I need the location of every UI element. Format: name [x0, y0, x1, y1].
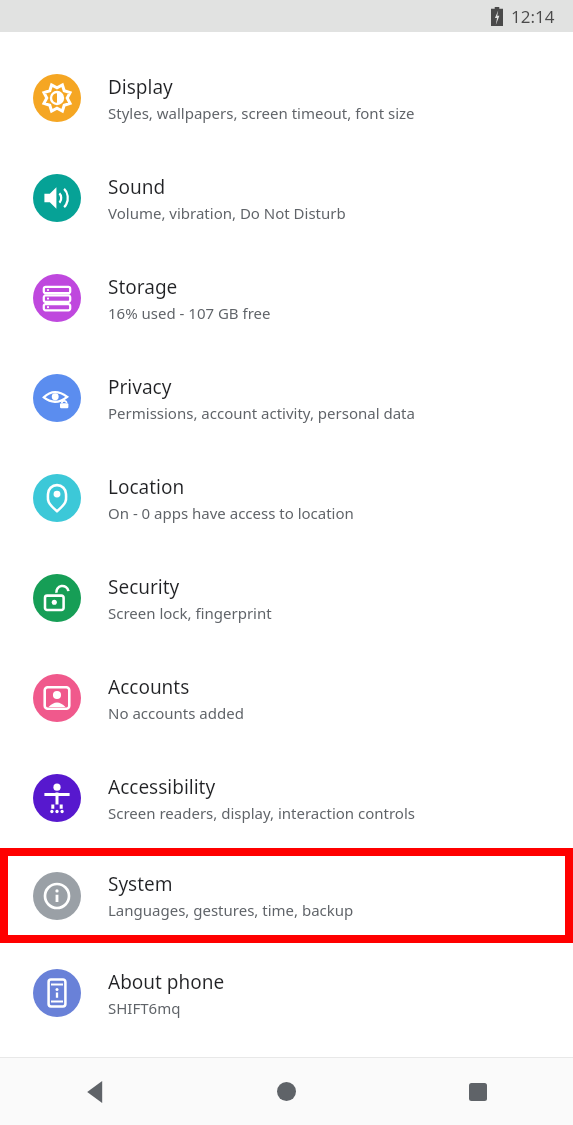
staticText: Privacy: [108, 374, 172, 400]
button[interactable]: Location: [0, 448, 573, 548]
staticText: Permissions, account activity, personal …: [108, 403, 415, 423]
button[interactable]: System: [8, 856, 565, 935]
staticText: Location: [108, 474, 185, 500]
staticText: Screen lock, fingerprint: [108, 603, 272, 623]
button[interactable]: Accounts: [0, 648, 573, 748]
button[interactable]: Sound: [0, 148, 573, 248]
staticText: Languages, gestures, time, backup: [108, 900, 354, 920]
staticText: Accessibility: [108, 774, 216, 800]
button[interactable]: Display: [0, 48, 573, 148]
staticText: No accounts added: [108, 703, 244, 723]
staticText: Volume, vibration, Do Not Disturb: [108, 203, 346, 223]
button[interactable]: Accessibility: [0, 748, 573, 848]
staticText: Screen readers, display, interaction con…: [108, 803, 415, 823]
button[interactable]: Storage: [0, 248, 573, 348]
staticText: 12:14: [511, 5, 555, 28]
staticText: Storage: [108, 274, 178, 300]
staticText: Security: [108, 574, 180, 600]
staticText: On - 0 apps have access to location: [108, 503, 354, 523]
staticText: About phone: [108, 969, 225, 995]
staticText: System: [108, 871, 173, 897]
button[interactable]: Back: [0, 1058, 191, 1125]
button[interactable]: Recents: [382, 1058, 573, 1125]
button[interactable]: Home: [191, 1058, 382, 1125]
button[interactable]: Security: [0, 548, 573, 648]
staticText: Display: [108, 74, 173, 100]
button[interactable]: Privacy: [0, 348, 573, 448]
staticText: SHIFT6mq: [108, 998, 181, 1018]
staticText: 16% used - 107 GB free: [108, 303, 271, 323]
button[interactable]: About phone: [0, 943, 573, 1043]
staticText: Styles, wallpapers, screen timeout, font…: [108, 103, 415, 123]
staticText: Accounts: [108, 674, 190, 700]
staticText: Sound: [108, 174, 166, 200]
